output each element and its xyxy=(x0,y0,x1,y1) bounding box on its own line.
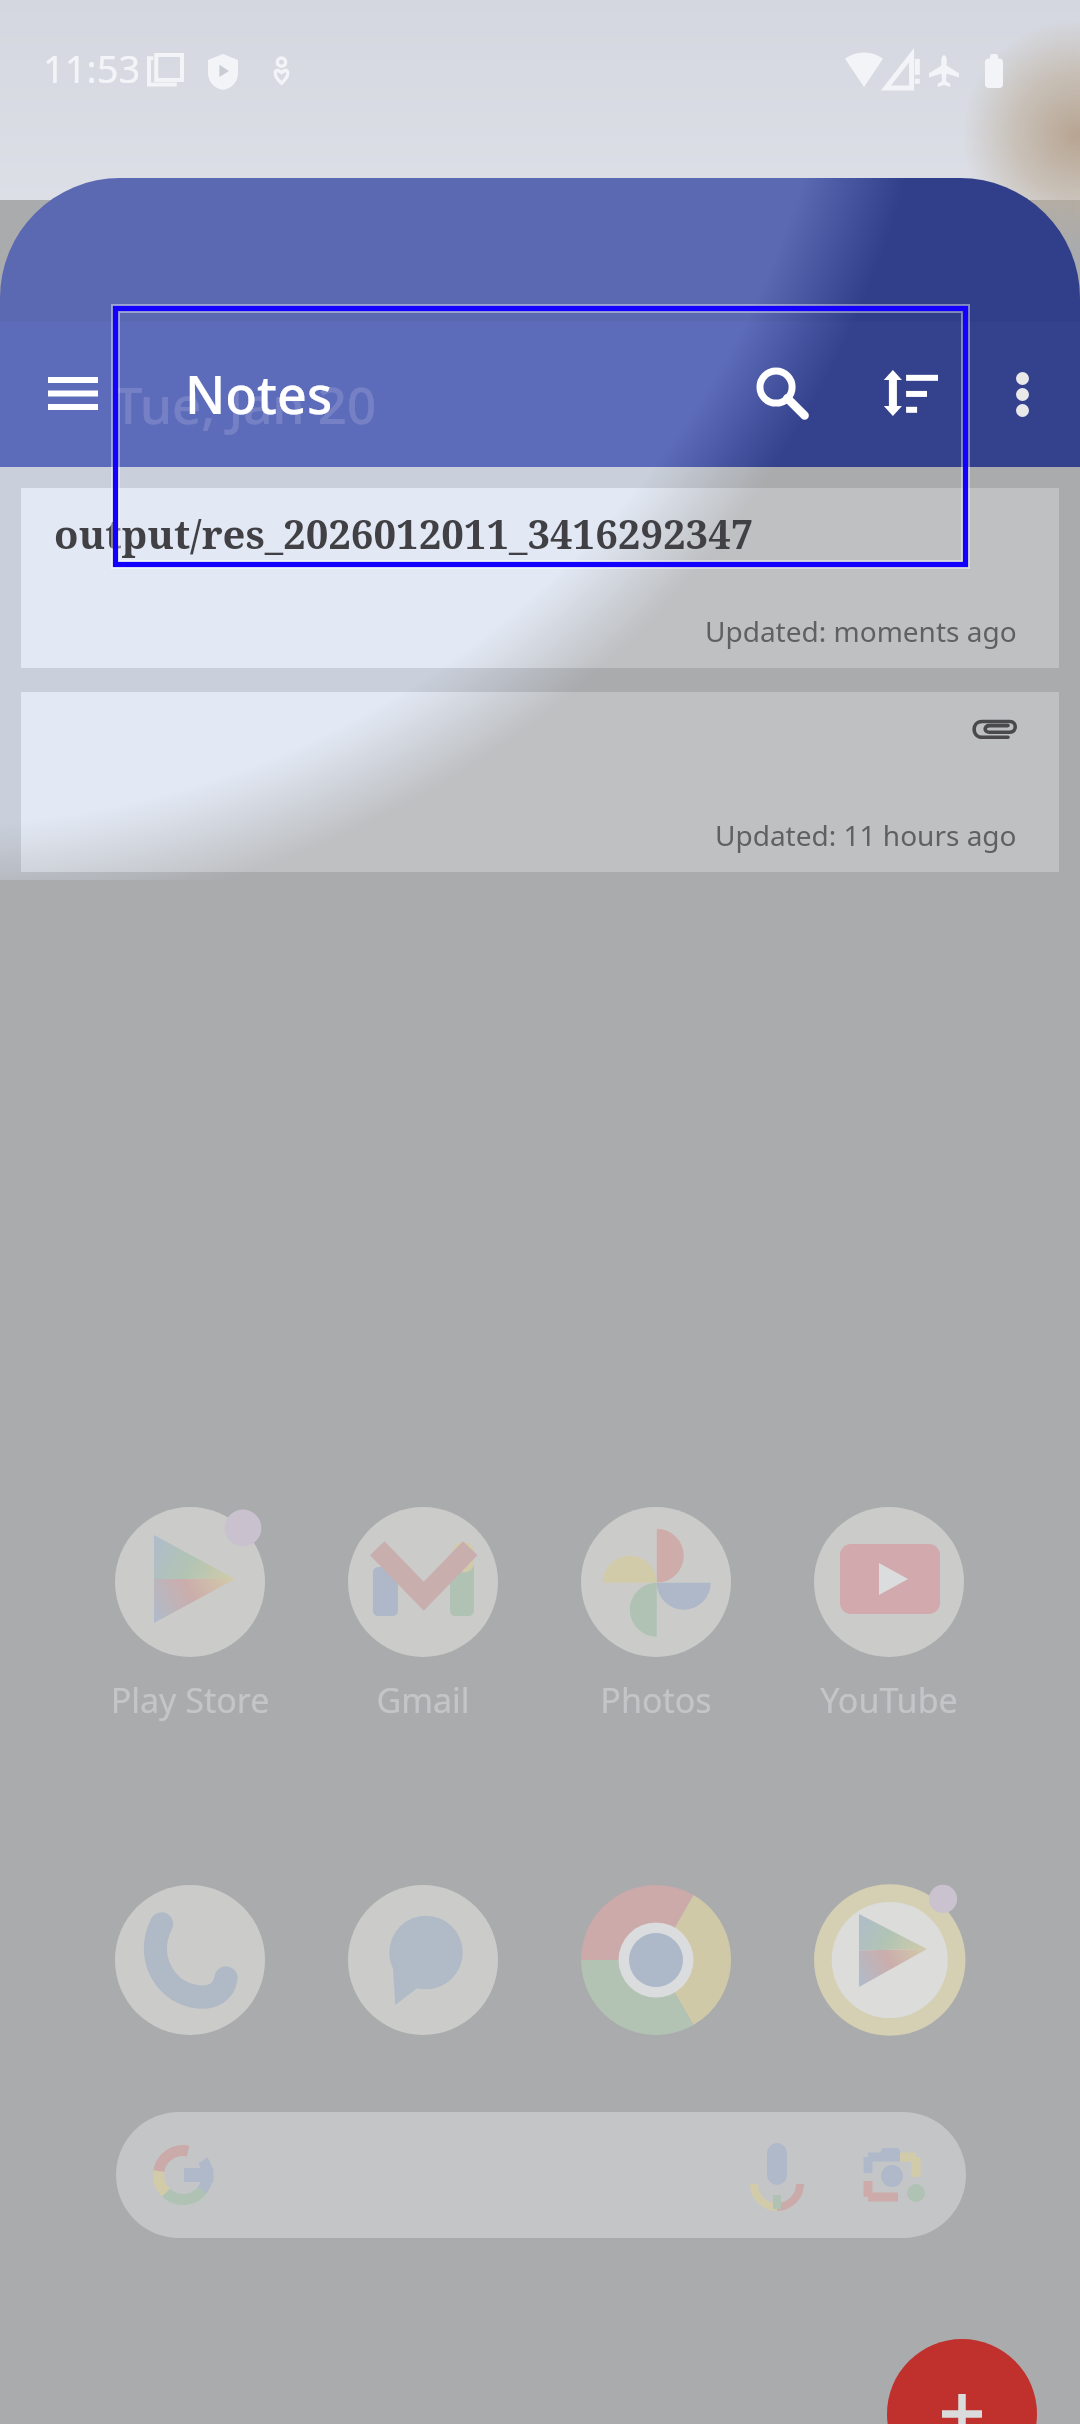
staticText: 11:53 xyxy=(43,42,141,94)
staticText: Photos xyxy=(526,1677,786,1723)
staticText: Play Store xyxy=(60,1677,320,1723)
staticText: Tue, Jan 20 xyxy=(114,369,377,438)
button[interactable]: Photos xyxy=(581,1507,731,1657)
button[interactable]: Open navigation drawer xyxy=(12,332,134,454)
staticText: output/res_2026012011_3416292347 xyxy=(54,506,754,560)
staticText: Notes xyxy=(185,358,333,429)
staticText: Gmail xyxy=(293,1677,553,1723)
button[interactable]: Phone xyxy=(115,1885,265,2035)
staticText: Updated: 11 hours ago xyxy=(715,816,1017,854)
button[interactable]: Search Google xyxy=(116,2112,966,2238)
button[interactable]: Play Store xyxy=(115,1507,265,1657)
button[interactable]: New note xyxy=(887,2339,1037,2424)
button[interactable]: Updated: 11 hours ago xyxy=(21,692,1059,872)
button[interactable]: More options xyxy=(964,336,1080,452)
button[interactable]: Play Store xyxy=(814,1885,964,2035)
staticText: Updated: moments ago xyxy=(705,612,1017,650)
button[interactable]: output/res_2026012011_3416292347 xyxy=(21,488,1059,668)
button[interactable]: Chrome xyxy=(581,1885,731,2035)
button[interactable]: Messages xyxy=(348,1885,498,2035)
button[interactable]: YouTube xyxy=(814,1507,964,1657)
staticText: YouTube xyxy=(759,1677,1019,1723)
button[interactable]: Sort xyxy=(845,328,975,458)
button[interactable]: Search xyxy=(717,328,849,460)
button[interactable]: Gmail xyxy=(348,1507,498,1657)
